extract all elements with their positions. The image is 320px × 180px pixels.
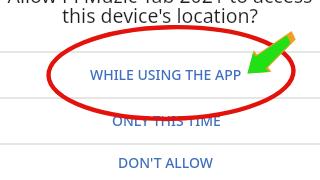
staticText: Allow Pi Muzic Tab 2021 to access this d… — [0, 0, 320, 29]
staticText: WHILE USING THE APP — [90, 65, 242, 84]
button[interactable]: WHILE USING THE APP — [0, 52, 320, 97]
staticText: ONLY THIS TIME — [112, 111, 221, 130]
staticText: DON'T ALLOW — [118, 153, 214, 172]
button[interactable]: DON'T ALLOW — [0, 145, 320, 180]
button[interactable]: ONLY THIS TIME — [0, 97, 320, 144]
